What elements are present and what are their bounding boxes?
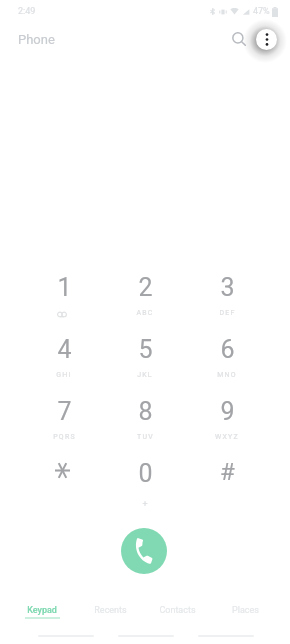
staticText: 8	[138, 397, 153, 426]
staticText: TUV	[137, 433, 154, 441]
button[interactable]: 9	[186, 379, 268, 441]
staticText: #	[220, 458, 235, 486]
staticText: ABC	[136, 309, 154, 317]
button[interactable]: 7	[23, 379, 105, 441]
staticText: +	[142, 499, 148, 510]
staticText: 2	[138, 273, 153, 302]
button[interactable]: 4	[23, 317, 105, 379]
button[interactable]: Search	[228, 28, 250, 50]
button[interactable]: Contacts	[143, 600, 211, 626]
staticText: 0	[138, 459, 153, 488]
staticText: 4	[57, 335, 72, 364]
button[interactable]: #	[186, 441, 268, 503]
staticText: PQRS	[53, 433, 76, 441]
button[interactable]: 0	[104, 441, 186, 503]
staticText: JKL	[137, 371, 153, 379]
staticText: DEF	[219, 309, 236, 317]
staticText: 3	[220, 273, 235, 302]
staticText: 9	[220, 397, 235, 426]
staticText: 5	[138, 335, 153, 364]
button[interactable]: More options	[256, 29, 277, 50]
button[interactable]: 8	[104, 379, 186, 441]
button[interactable]	[23, 441, 105, 503]
button[interactable]: Keypad	[8, 600, 76, 626]
button[interactable]: 5	[104, 317, 186, 379]
staticText: Recents	[94, 605, 127, 616]
button[interactable]: Recents	[76, 600, 144, 626]
staticText: 2:49	[18, 6, 36, 17]
button[interactable]: Places	[211, 600, 279, 626]
staticText: Phone	[18, 32, 55, 47]
staticText: GHI	[56, 371, 72, 379]
staticText: 6	[220, 335, 235, 364]
staticText: MNO	[217, 371, 237, 379]
staticText: 7	[57, 397, 72, 426]
staticText: 1	[57, 273, 72, 302]
button[interactable]: 3	[186, 255, 268, 317]
button[interactable]: Call	[121, 528, 167, 574]
staticText: Keypad	[27, 605, 57, 616]
staticText: Places	[232, 605, 259, 616]
staticText: 47%	[253, 6, 270, 17]
button[interactable]: 6	[186, 317, 268, 379]
staticText: Contacts	[159, 605, 196, 616]
staticText: WXYZ	[215, 433, 239, 441]
button[interactable]: 1	[23, 255, 105, 317]
button[interactable]: 2	[104, 255, 186, 317]
